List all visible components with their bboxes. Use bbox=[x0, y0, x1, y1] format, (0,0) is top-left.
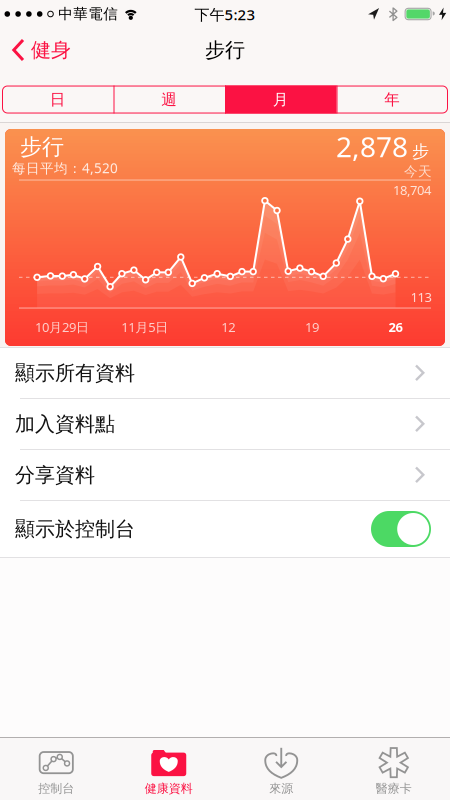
staticText: 日 bbox=[50, 90, 66, 109]
staticText: 健身 bbox=[31, 38, 71, 62]
button[interactable]: 顯示於控制台 bbox=[0, 501, 450, 557]
staticText: 分享資料 bbox=[15, 463, 95, 487]
staticText: 步行 bbox=[20, 133, 64, 160]
button[interactable]: 月 bbox=[225, 85, 336, 113]
staticText: 控制台 bbox=[38, 781, 74, 796]
staticText: 步行 bbox=[205, 38, 245, 62]
button[interactable]: 來源 bbox=[225, 738, 337, 800]
staticText: 步 bbox=[412, 141, 429, 162]
button[interactable]: 加入資料點 bbox=[0, 399, 450, 449]
staticText: 下午5:23 bbox=[194, 4, 255, 24]
button[interactable]: 分享資料 bbox=[0, 450, 450, 500]
staticText: 年 bbox=[384, 90, 400, 109]
staticText: 來源 bbox=[269, 781, 293, 796]
button[interactable]: 週 bbox=[113, 85, 225, 113]
staticText: 19 bbox=[305, 318, 319, 336]
staticText: 加入資料點 bbox=[15, 412, 115, 436]
staticText: 顯示所有資料 bbox=[15, 361, 135, 385]
staticText: 2,878 bbox=[336, 128, 408, 165]
button[interactable]: 健身 bbox=[12, 38, 71, 62]
staticText: 顯示於控制台 bbox=[15, 517, 135, 541]
button[interactable]: 健康資料 bbox=[112, 738, 225, 800]
staticText: 12 bbox=[221, 318, 235, 336]
staticText: 醫療卡 bbox=[376, 781, 412, 796]
staticText: 今天 bbox=[404, 163, 432, 180]
staticText: 週 bbox=[161, 90, 177, 109]
button[interactable]: 年 bbox=[336, 85, 448, 113]
button[interactable]: 日 bbox=[2, 85, 113, 113]
staticText: 月 bbox=[273, 90, 289, 109]
staticText: 10月29日 bbox=[35, 318, 89, 336]
staticText: 26 bbox=[389, 318, 403, 336]
staticText: 中華電信 bbox=[58, 5, 118, 23]
button[interactable]: 顯示所有資料 bbox=[0, 348, 450, 398]
staticText: 113 bbox=[410, 288, 431, 306]
staticText: 每日平均：4,520 bbox=[12, 159, 118, 177]
button[interactable]: 醫療卡 bbox=[337, 738, 450, 800]
staticText: 11月5日 bbox=[121, 318, 168, 336]
staticText: 健康資料 bbox=[145, 781, 193, 796]
staticText: 18,704 bbox=[393, 181, 431, 199]
button[interactable]: 控制台 bbox=[0, 738, 112, 800]
